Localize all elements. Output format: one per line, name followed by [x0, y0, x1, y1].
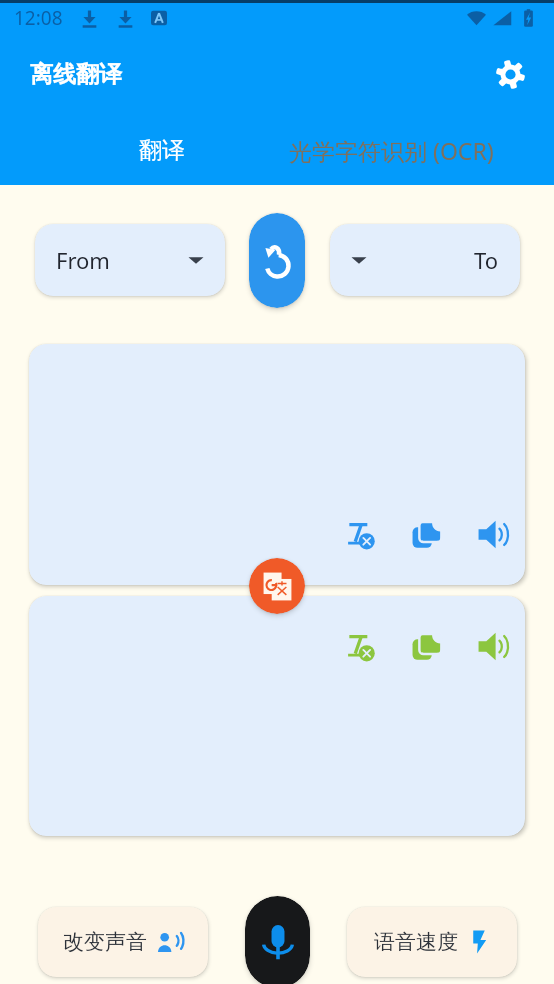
button[interactable]: Copy: [406, 514, 446, 554]
staticText: From: [56, 245, 110, 275]
staticText: To: [474, 245, 499, 275]
button[interactable]: Translate: [249, 558, 305, 614]
button[interactable]: Swap languages: [249, 213, 305, 308]
button[interactable]: Settings: [488, 52, 532, 96]
button[interactable]: Copy translation: [406, 626, 446, 666]
button[interactable]: Clear text: [340, 514, 380, 554]
staticText: 语音速度: [374, 929, 458, 955]
button[interactable]: From: [35, 224, 225, 296]
button[interactable]: 翻译: [108, 126, 216, 174]
button[interactable]: To: [330, 224, 520, 296]
button[interactable]: Microphone: [245, 896, 310, 984]
staticText: 12:08: [14, 5, 63, 31]
staticText: 离线翻译: [30, 60, 122, 89]
button[interactable]: Speak: [472, 514, 512, 554]
button[interactable]: 改变声音: [38, 907, 208, 977]
staticText: 改变声音: [63, 929, 147, 955]
staticText: 翻译: [139, 136, 185, 165]
staticText: 光学字符识别 (OCR): [289, 135, 494, 166]
button[interactable]: Speak translation: [472, 626, 512, 666]
button[interactable]: 光学字符识别 (OCR): [283, 126, 499, 174]
button[interactable]: Clear translated text: [340, 626, 380, 666]
button[interactable]: 语音速度: [347, 907, 517, 977]
